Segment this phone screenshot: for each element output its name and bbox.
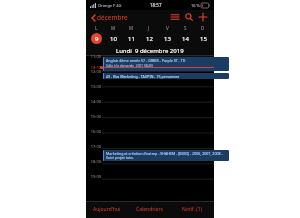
button[interactable]: décembre	[90, 11, 129, 24]
staticText: Lundi 9 décembre 2019	[116, 47, 184, 55]
staticText: 9	[95, 35, 99, 43]
staticText: D	[201, 25, 205, 31]
button[interactable]: 43 - Bva Marketing - TAUPIN - 15 personn…	[103, 73, 229, 79]
button[interactable]: Notif. (1)	[171, 201, 214, 218]
staticText: décembre	[97, 13, 128, 22]
staticText: 10	[110, 35, 117, 43]
button[interactable]: 11	[122, 32, 140, 45]
staticText: 12	[146, 35, 153, 43]
staticText: Marketing et création d'entrep - SHAHEM …	[106, 151, 228, 161]
staticText: Calendriers	[136, 206, 163, 213]
button[interactable]: 14	[176, 32, 194, 45]
staticText: 18:57	[87, 65, 101, 70]
staticText: 43 - Bva Marketing - TAUPIN - 15 personn…	[106, 74, 180, 79]
button[interactable]: Aujourd'hui	[86, 201, 128, 218]
staticText: 17:00	[87, 144, 101, 149]
button[interactable]: Calendriers	[128, 201, 171, 218]
staticText: Orange F 4G	[98, 3, 122, 8]
staticText: 18:00	[87, 159, 101, 164]
button[interactable]: Anglais 4ème année S7 - GIBBS - Purple S…	[103, 57, 229, 71]
button[interactable]: Liste	[168, 10, 182, 24]
button[interactable]: Rechercher	[182, 10, 196, 24]
button[interactable]: 15	[194, 32, 212, 45]
staticText: 16 %	[191, 3, 200, 8]
staticText: 14:00	[87, 99, 101, 104]
button[interactable]: 13	[158, 32, 176, 45]
button[interactable]: Marketing et création d'entrep - SHAHEM …	[103, 150, 229, 161]
staticText: L	[95, 25, 98, 31]
staticText: Anglais 4ème année S7 - GIBBS - Purple S…	[106, 58, 186, 63]
staticText: 18:57	[150, 2, 162, 8]
staticText: 16:00	[87, 129, 101, 134]
staticText: Notif. (1)	[182, 206, 203, 213]
button[interactable]: 10	[105, 32, 122, 45]
staticText: S	[184, 25, 187, 31]
staticText: 11:00	[87, 54, 101, 59]
staticText: 19:00	[87, 174, 101, 179]
staticText: M	[129, 25, 134, 31]
staticText: 13:00	[87, 84, 101, 89]
staticText: Salle à la demande, 2021 FALIN	[106, 64, 153, 68]
button[interactable]: Ajouter un événement	[196, 10, 210, 24]
button[interactable]: 9	[88, 32, 105, 45]
staticText: J	[148, 25, 150, 31]
staticText: 14	[182, 35, 189, 43]
staticText: 12:00	[87, 69, 101, 74]
staticText: 11	[128, 35, 135, 43]
staticText: 15:00	[87, 114, 101, 119]
button[interactable]: 12	[140, 32, 158, 45]
staticText: V	[166, 25, 169, 31]
staticText: 13	[164, 35, 171, 43]
staticText: M	[111, 25, 116, 31]
staticText: 15	[200, 35, 207, 43]
staticText: Aujourd'hui	[93, 206, 121, 213]
